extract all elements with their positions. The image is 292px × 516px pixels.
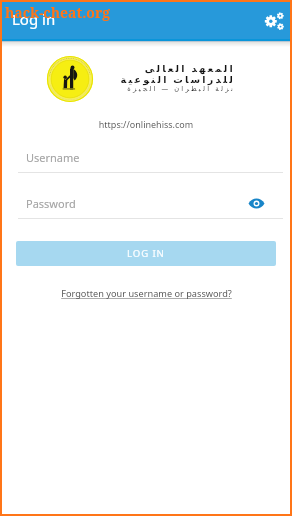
button[interactable]: Settings	[262, 7, 288, 33]
staticText: LOG IN	[127, 247, 165, 260]
staticText: hack-cheat.org	[5, 3, 111, 22]
button[interactable]: Forgotten your username or password?	[0, 285, 292, 301]
staticText: المعهد العالى	[75, 62, 235, 75]
staticText: https://onlinehiss.com	[0, 118, 292, 130]
staticText: Password	[26, 196, 76, 211]
button[interactable]: LOG IN	[16, 241, 276, 266]
staticText: نزلة البطران — الجيزة	[75, 84, 235, 93]
staticText: Username	[26, 150, 80, 165]
staticText: Forgotten your username or password?	[61, 287, 232, 300]
staticText: Log in	[12, 9, 56, 29]
button[interactable]: Show password	[242, 189, 270, 217]
staticText: للدراسات النوعية	[75, 73, 235, 86]
